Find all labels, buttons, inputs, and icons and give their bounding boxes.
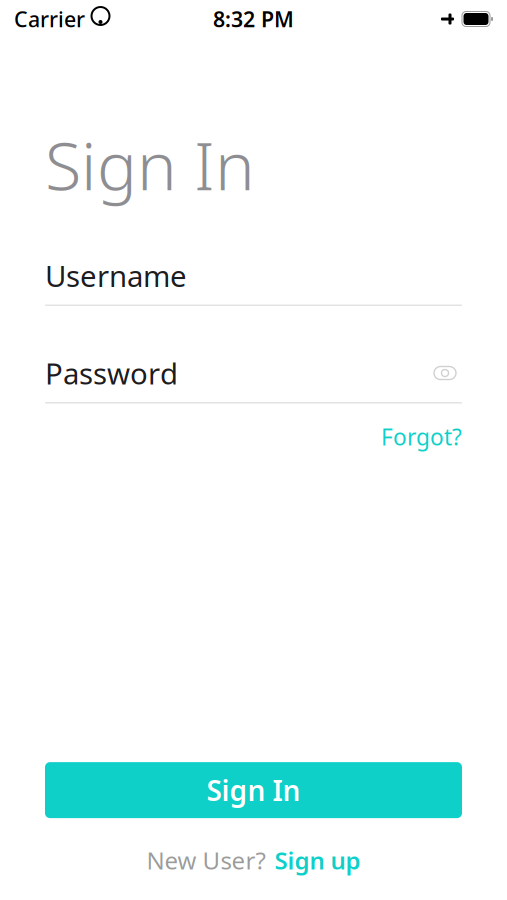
button[interactable]: Sign In: [45, 762, 462, 818]
button[interactable]: Show password: [428, 359, 462, 387]
staticText: Sign In: [45, 120, 255, 208]
staticText: Sign In: [206, 771, 300, 809]
button[interactable]: Sign up: [274, 844, 360, 876]
staticText: Forgot?: [381, 421, 462, 452]
staticText: Password: [45, 354, 178, 393]
staticText: 8:32 PM: [213, 5, 294, 33]
staticText: Carrier: [14, 5, 85, 33]
staticText: Sign up: [274, 844, 360, 876]
staticText: New User?: [146, 844, 265, 876]
staticText: Username: [45, 256, 187, 295]
button[interactable]: Forgot?: [381, 415, 462, 458]
